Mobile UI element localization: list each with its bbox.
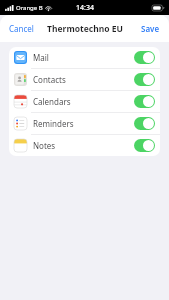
button[interactable]: Mail — [9, 47, 160, 68]
staticText: Notes — [33, 140, 56, 151]
button[interactable]: Cancel — [5, 19, 38, 38]
staticText: Calendars — [33, 96, 71, 107]
button[interactable]: Save — [137, 19, 164, 38]
staticText: Orange B — [16, 4, 43, 12]
button[interactable]: Toggle on — [134, 139, 155, 152]
staticText: Reminders — [33, 118, 74, 129]
button[interactable]: Toggle on — [134, 117, 155, 130]
button[interactable]: Contacts — [9, 69, 160, 90]
staticText: 14:34 — [76, 3, 94, 13]
button[interactable]: Calendars — [9, 91, 160, 112]
button[interactable]: Toggle on — [134, 95, 155, 108]
staticText: Cancel — [9, 23, 34, 34]
button[interactable]: Toggle on — [134, 51, 155, 64]
button[interactable]: Toggle on — [134, 73, 155, 86]
button[interactable]: Notes — [9, 135, 160, 156]
staticText: Mail — [33, 52, 49, 63]
staticText: Contacts — [33, 74, 66, 85]
button[interactable]: Reminders — [9, 113, 160, 134]
staticText: Save — [141, 23, 160, 34]
staticText: Thermotechno EU — [47, 23, 123, 35]
